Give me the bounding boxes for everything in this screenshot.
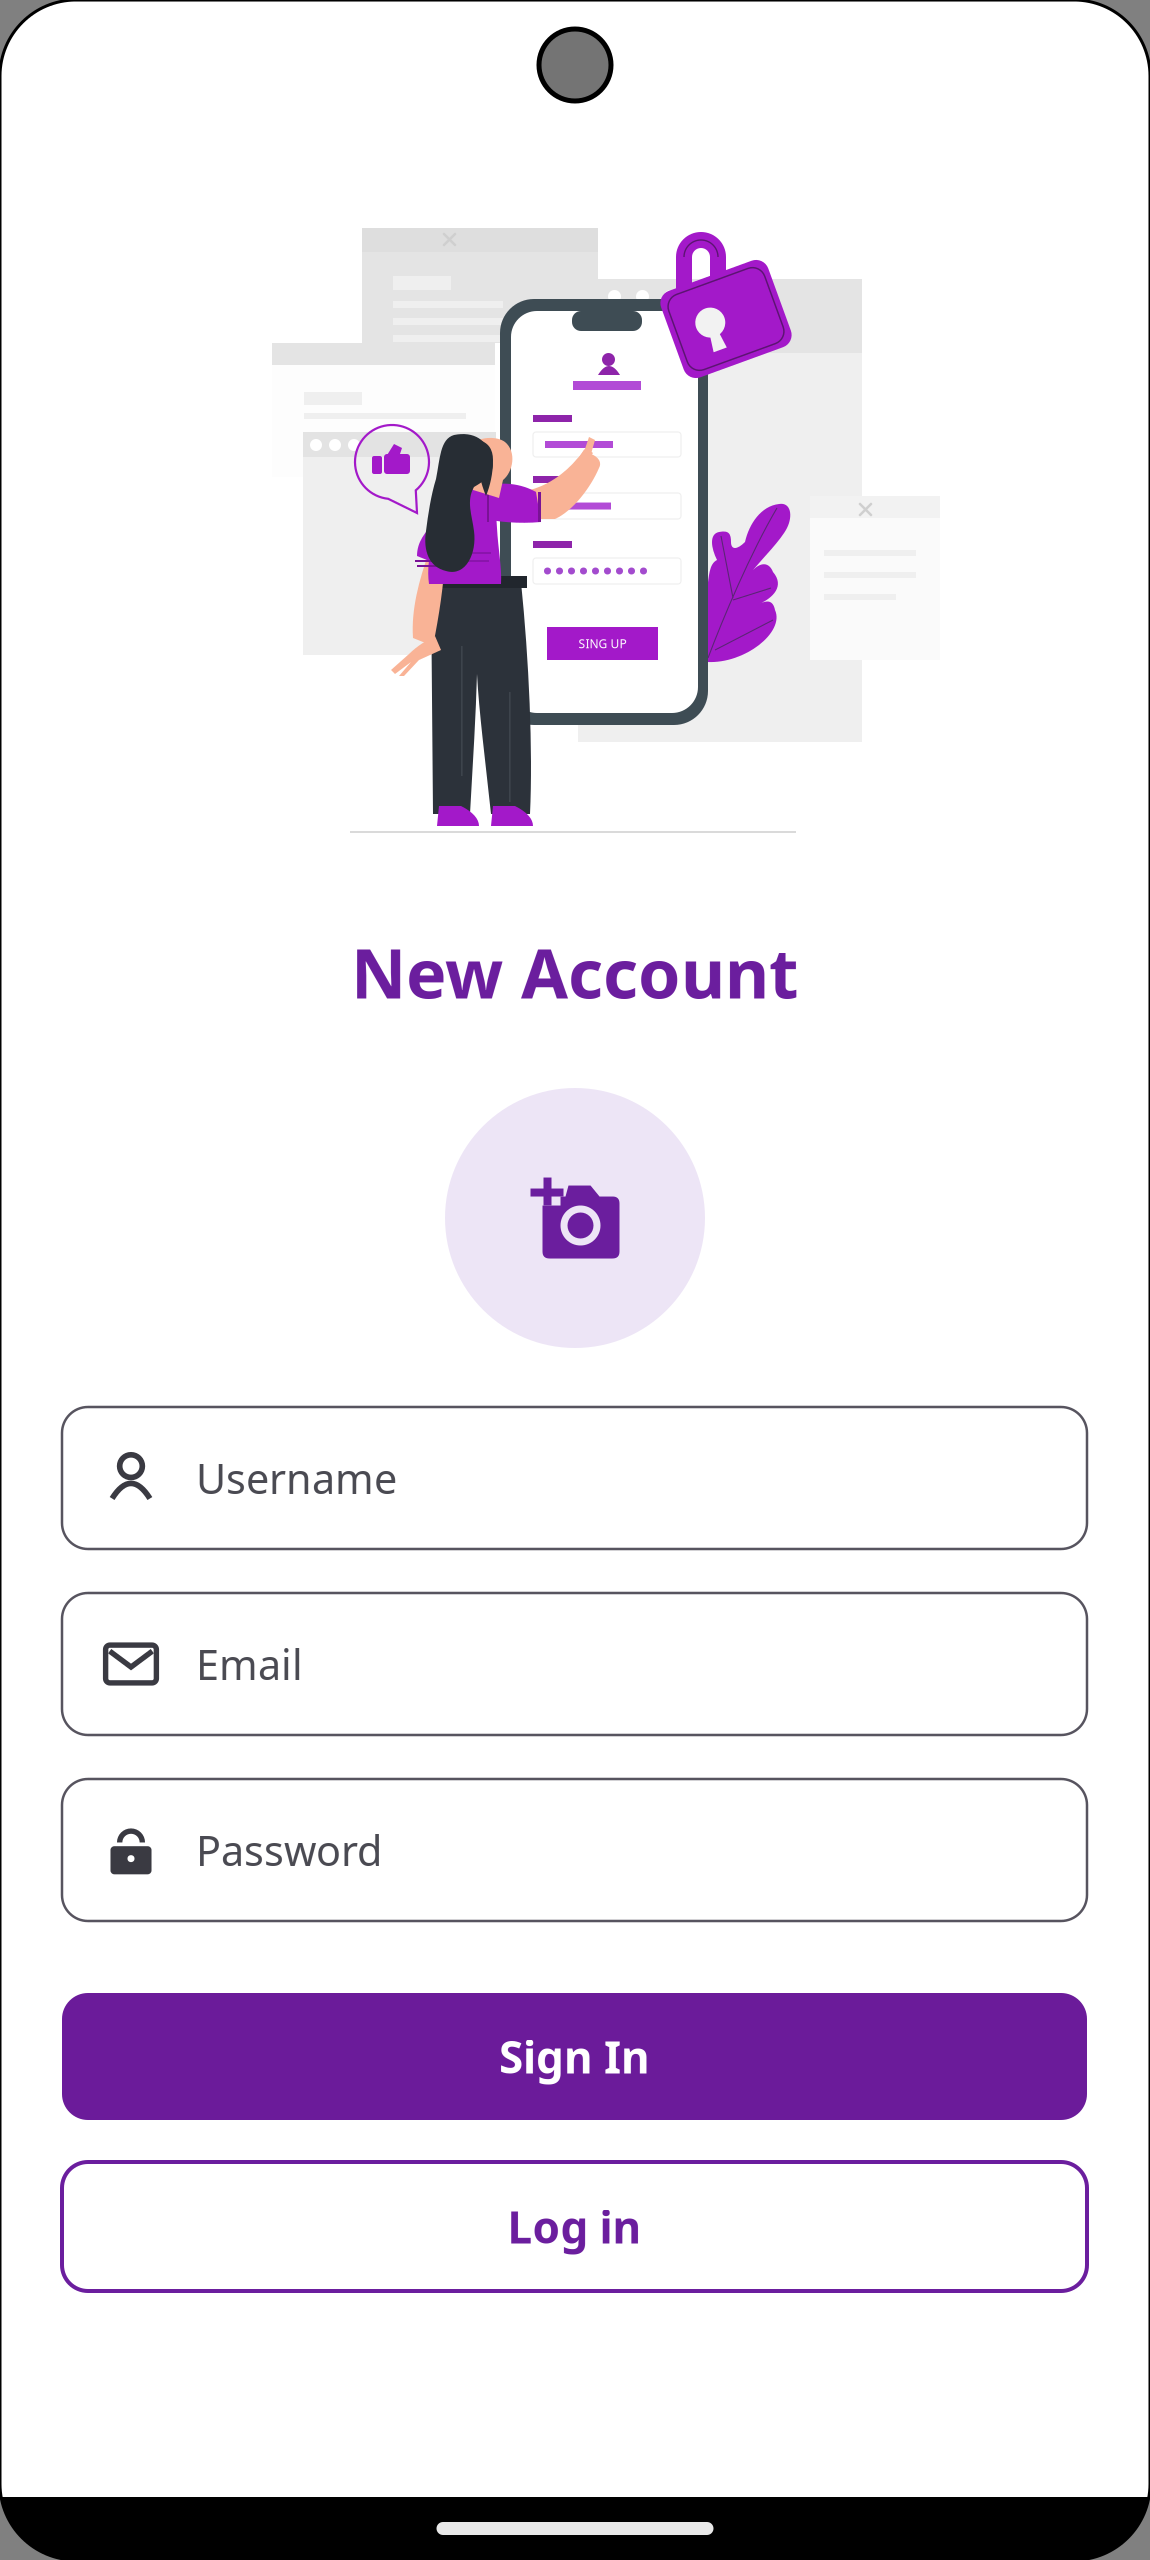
staticText: Password: [196, 1823, 382, 1877]
staticText: Sign In: [499, 2027, 650, 2086]
button[interactable]: Add profile photo: [445, 1088, 705, 1348]
staticText: Log in: [507, 2197, 641, 2256]
button[interactable]: Password: [62, 1779, 1087, 1921]
button[interactable]: Sign In: [62, 1993, 1087, 2120]
button[interactable]: Log in: [62, 2162, 1087, 2291]
staticText: New Account: [351, 927, 799, 1017]
staticText: Username: [196, 1451, 397, 1505]
staticText: SING UP: [578, 635, 626, 651]
staticText: Email: [196, 1637, 303, 1691]
button[interactable]: Username: [62, 1407, 1087, 1549]
button[interactable]: Email: [62, 1593, 1087, 1735]
